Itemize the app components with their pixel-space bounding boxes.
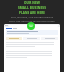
staticText: SMALL BUSINESS: [0, 6, 64, 10]
staticText: PLANS ARE HERE: [0, 11, 64, 15]
button[interactable]: [9, 25, 58, 27]
button[interactable]: [41, 37, 58, 40]
staticText: NO CONTRACTS • NO SURPRISES: [0, 24, 64, 27]
button[interactable]: [6, 30, 58, 35]
staticText: FAST, RELIABLE, AND FLEXIBLE SERVICE: [0, 16, 64, 19]
button[interactable]: [23, 37, 40, 40]
button[interactable]: [4, 24, 60, 72]
staticText: BUILT FOR GROWING TEAMS EVERYWHERE: [0, 20, 64, 23]
button[interactable]: Special offer badge: [27, 22, 35, 30]
staticText: OUR NEW: [0, 1, 64, 5]
button[interactable]: [6, 37, 22, 40]
